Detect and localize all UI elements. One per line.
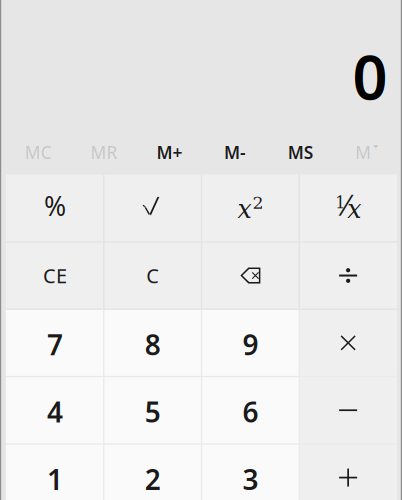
staticText: M+ — [156, 141, 182, 164]
button[interactable]: 4 — [6, 376, 104, 444]
button[interactable]: 1 — [6, 444, 104, 500]
staticText: M — [355, 141, 371, 164]
staticText: x — [347, 194, 361, 224]
staticText: 1 — [335, 193, 345, 212]
button[interactable]: 5 — [104, 376, 202, 444]
staticText: 8 — [145, 326, 161, 363]
staticText: MR — [90, 141, 117, 164]
button[interactable]: MC — [5, 135, 71, 169]
staticText: 3 — [242, 460, 258, 498]
staticText: 4 — [47, 393, 63, 430]
staticText: M- — [224, 141, 246, 164]
staticText: 6 — [242, 393, 258, 430]
staticText: 9 — [242, 326, 258, 363]
button[interactable]: 2 — [104, 444, 202, 500]
staticText: MS — [288, 141, 314, 164]
button[interactable]: M+ — [137, 135, 202, 169]
button[interactable]: 8 — [104, 309, 202, 376]
button[interactable]: M- — [202, 135, 268, 169]
button[interactable]: % — [6, 174, 104, 242]
staticText: 2 — [145, 460, 161, 498]
staticText: MC — [25, 141, 52, 164]
staticText: % — [44, 188, 66, 223]
staticText: C — [146, 262, 159, 289]
staticText: 0 — [352, 35, 387, 117]
staticText: 1 — [47, 460, 63, 498]
staticText: 5 — [145, 393, 161, 430]
button[interactable]: Multiply — [299, 309, 397, 376]
staticText: ⁄ — [344, 190, 349, 222]
button[interactable]: Add — [299, 444, 397, 500]
staticText: CE — [43, 262, 67, 289]
button[interactable]: Square root — [104, 174, 202, 242]
button[interactable]: MS — [268, 135, 333, 169]
button[interactable]: 7 — [6, 309, 104, 376]
button[interactable]: M — [333, 135, 399, 169]
button[interactable]: 9 — [201, 309, 299, 376]
button[interactable]: MR — [71, 135, 137, 169]
button[interactable]: C — [104, 242, 202, 309]
button[interactable]: Divide — [299, 242, 397, 309]
staticText: 2 — [252, 193, 263, 213]
button[interactable]: x — [201, 174, 299, 242]
button[interactable]: Subtract — [299, 376, 397, 444]
staticText: x — [237, 194, 251, 224]
button[interactable]: CE — [6, 242, 104, 309]
button[interactable]: 3 — [201, 444, 299, 500]
staticText: 7 — [47, 326, 63, 363]
button[interactable]: Backspace — [201, 242, 299, 309]
button[interactable]: 6 — [201, 376, 299, 444]
button[interactable]: 1 — [299, 174, 397, 242]
